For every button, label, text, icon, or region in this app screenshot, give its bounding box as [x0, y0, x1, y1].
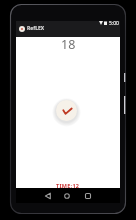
staticText: 5:00 [109, 20, 119, 25]
button[interactable]: Home [61, 190, 73, 202]
staticText: RefLEX [27, 25, 45, 32]
staticText: TIME:12 [56, 182, 80, 189]
staticText: 18 [61, 36, 76, 53]
button[interactable]: Back [42, 190, 54, 202]
button[interactable]: RefLEX [19, 24, 120, 33]
button[interactable]: Confirm [53, 97, 80, 124]
button[interactable]: Recent apps [82, 190, 94, 202]
